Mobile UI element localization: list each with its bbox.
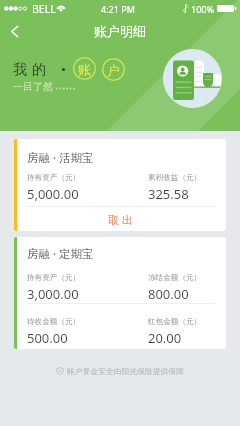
staticText: 房融 · 活期宝 [27,150,94,166]
staticText: 800.00 [148,285,189,303]
staticText: 持有资产（元） [27,173,81,183]
staticText: 账户明细 [94,23,146,39]
staticText: 4:21 PM [101,3,135,15]
staticText: 房融 · 定期宝 [27,246,94,262]
staticText: 取 出 [108,212,133,227]
staticText: 325.58 [148,185,189,203]
staticText: BELL [32,2,56,16]
button[interactable]: Back [0,18,30,44]
staticText: 一目了然 [13,80,53,93]
staticText: 户 [107,62,120,78]
button[interactable]: 房融 · 定期宝 [14,237,226,349]
staticText: 100% [191,3,214,15]
staticText: 红包金额（元） [148,317,202,327]
staticText: 的 [32,61,46,79]
staticText: 3,000.00 [27,285,79,303]
staticText: 累积收益（元） [148,173,202,183]
staticText: 冻结金额（元） [148,273,202,283]
button[interactable]: 取 出 [14,207,226,231]
staticText: 账户资金安全由阳光保险提供保障 [67,366,184,376]
staticText: 持有资产（元） [27,273,81,283]
staticText: 账 [78,61,91,77]
staticText: 我 [13,61,27,79]
button[interactable]: 房融 · 活期宝 [14,139,226,231]
staticText: 5,000.00 [27,185,79,203]
staticText: 待收金额（元） [27,317,81,327]
staticText: 20.00 [148,329,182,347]
staticText: 500.00 [27,329,68,347]
